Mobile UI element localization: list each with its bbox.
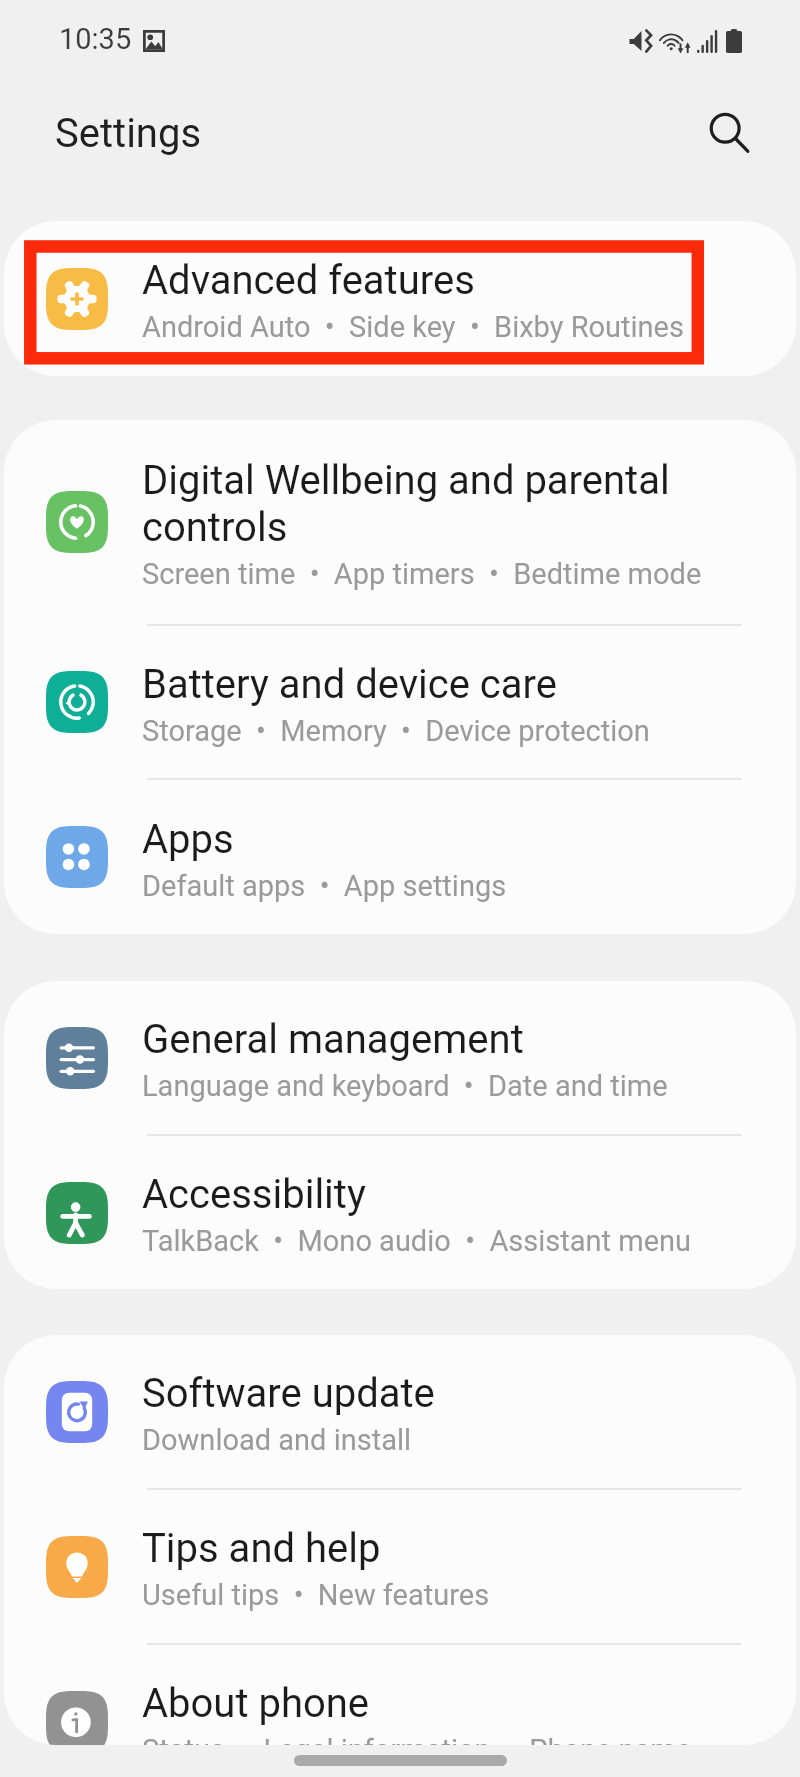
button[interactable]: About phone bbox=[4, 1645, 796, 1745]
staticText: Accessibility bbox=[142, 1171, 366, 1218]
staticText: Default apps • App settings bbox=[142, 869, 507, 903]
button[interactable]: Advanced features bbox=[4, 221, 796, 376]
button[interactable]: Software update bbox=[4, 1335, 796, 1488]
button[interactable]: Digital Wellbeing and parental controls bbox=[4, 420, 796, 624]
staticText: About phone bbox=[142, 1680, 370, 1727]
button[interactable]: Apps bbox=[4, 780, 796, 934]
staticText: TalkBack • Mono audio • Assistant menu bbox=[142, 1224, 692, 1258]
staticText: Advanced features bbox=[142, 257, 475, 304]
staticText: Language and keyboard • Date and time bbox=[142, 1069, 668, 1103]
button[interactable]: Battery and device care bbox=[4, 626, 796, 778]
button[interactable]: General management bbox=[4, 981, 796, 1134]
staticText: 10:35 bbox=[59, 22, 132, 56]
staticText: Tips and help bbox=[142, 1525, 381, 1572]
button[interactable]: Accessibility bbox=[4, 1136, 796, 1289]
staticText: Download and install bbox=[142, 1423, 412, 1457]
staticText: Battery and device care bbox=[142, 661, 557, 708]
staticText: Screen time • App timers • Bedtime mode bbox=[142, 557, 702, 591]
staticText: Useful tips • New features bbox=[142, 1578, 490, 1612]
staticText: Software update bbox=[142, 1370, 435, 1417]
staticText: Status • Legal information • Phone name bbox=[142, 1733, 692, 1745]
staticText: Android Auto • Side key • Bixby Routines bbox=[142, 310, 684, 344]
button[interactable]: Tips and help bbox=[4, 1490, 796, 1643]
staticText: Digital Wellbeing and parental controls bbox=[142, 457, 670, 551]
button[interactable]: Search bbox=[691, 95, 767, 171]
staticText: General management bbox=[142, 1016, 524, 1063]
staticText: Apps bbox=[142, 816, 234, 863]
staticText: Storage • Memory • Device protection bbox=[142, 714, 650, 748]
staticText: Settings bbox=[55, 110, 202, 157]
